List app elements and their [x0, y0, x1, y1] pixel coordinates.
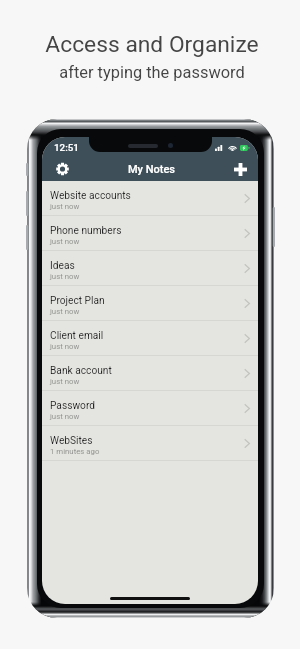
- button[interactable]: Project Plan: [42, 286, 258, 321]
- staticText: Client email: [50, 330, 104, 342]
- staticText: 1 minutes ago: [50, 447, 100, 456]
- staticText: Project Plan: [50, 295, 105, 307]
- staticText: just now: [50, 237, 80, 246]
- button[interactable]: Client email: [42, 321, 258, 356]
- staticText: just now: [50, 377, 80, 386]
- staticText: My Notes: [128, 163, 176, 176]
- staticText: Phone numbers: [50, 225, 122, 237]
- staticText: Bank account: [50, 365, 112, 377]
- button[interactable]: Phone numbers: [42, 216, 258, 251]
- button[interactable]: Ideas: [42, 251, 258, 286]
- staticText: Website accounts: [50, 190, 131, 202]
- staticText: 12:51: [54, 142, 79, 153]
- button[interactable]: Settings: [42, 157, 82, 181]
- staticText: just now: [50, 307, 80, 316]
- staticText: just now: [50, 202, 80, 211]
- button[interactable]: Password: [42, 391, 258, 426]
- staticText: Ideas: [50, 260, 75, 272]
- staticText: just now: [50, 412, 80, 421]
- button[interactable]: Bank account: [42, 356, 258, 391]
- button[interactable]: Add note: [223, 157, 258, 181]
- staticText: after typing the password: [59, 63, 245, 82]
- staticText: just now: [50, 342, 80, 351]
- staticText: just now: [50, 272, 80, 281]
- button[interactable]: Website accounts: [42, 181, 258, 216]
- staticText: WebSites: [50, 435, 93, 447]
- button[interactable]: WebSites: [42, 426, 258, 461]
- staticText: Access and Organize: [45, 31, 259, 58]
- staticText: Password: [50, 400, 95, 412]
